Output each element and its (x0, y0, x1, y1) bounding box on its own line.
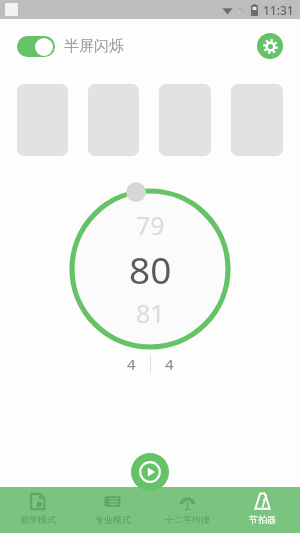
button[interactable]: Settings (257, 33, 283, 59)
button[interactable]: 十二平均律 (150, 487, 225, 533)
button[interactable]: 半屏闪烁 (17, 30, 124, 63)
staticText: 4 (127, 354, 136, 374)
staticText: 节拍器 (249, 514, 276, 525)
staticText: 11:31 (263, 2, 294, 18)
staticText: 80 (129, 244, 172, 294)
button[interactable]: Start metronome (131, 453, 169, 491)
button[interactable]: 节拍器 (225, 487, 300, 533)
button[interactable]: 专业模式 (75, 487, 150, 533)
staticText: 十二平均律 (165, 514, 210, 525)
button[interactable]: Tempo dial (62, 181, 238, 357)
staticText: 4 (165, 354, 174, 374)
staticText: 半屏闪烁 (64, 37, 124, 56)
button[interactable]: 初学模式 (0, 487, 75, 533)
button[interactable]: 4 (151, 351, 188, 377)
staticText: 专业模式 (95, 514, 131, 525)
staticText: 初学模式 (20, 514, 56, 525)
staticText: 81 (136, 296, 165, 330)
staticText: 79 (136, 208, 165, 242)
button[interactable]: 4 (113, 351, 150, 377)
